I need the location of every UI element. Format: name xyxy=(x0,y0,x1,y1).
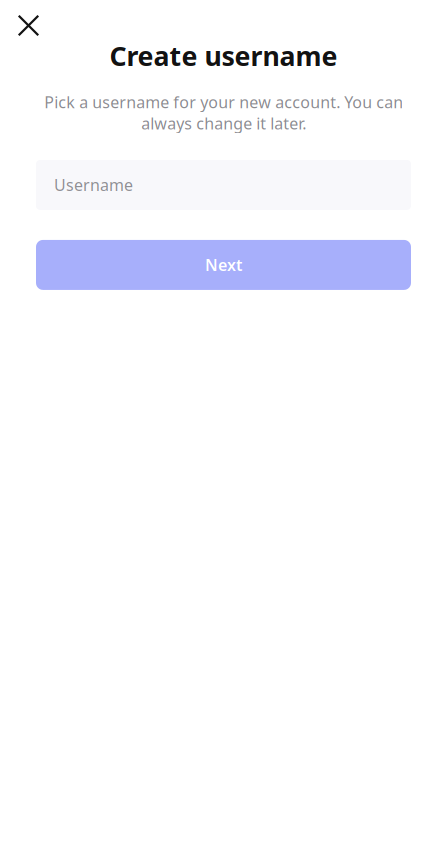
staticText: Create username xyxy=(109,38,337,73)
staticText: Pick a username for your new account. Yo… xyxy=(44,91,403,134)
staticText: Next xyxy=(205,254,242,275)
staticText: Username xyxy=(54,174,133,195)
button[interactable]: Next xyxy=(36,240,411,290)
button[interactable]: Username xyxy=(36,160,411,210)
button[interactable]: Close xyxy=(9,6,48,45)
